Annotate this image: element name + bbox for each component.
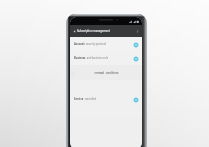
button[interactable]: renewal conditions <box>70 65 142 80</box>
button[interactable]: Account <box>70 37 142 51</box>
staticText: security protocol <box>85 42 107 46</box>
staticText: Account <box>74 42 85 46</box>
button[interactable]: Business <box>70 51 142 65</box>
staticText: Service <box>74 97 84 101</box>
button[interactable]: Back <box>71 28 78 35</box>
staticText: Business <box>74 56 86 60</box>
button[interactable]: Service <box>70 92 142 106</box>
button[interactable]: Info <box>133 56 139 62</box>
button[interactable]: Next <box>134 28 140 34</box>
staticText: renewal conditions <box>94 71 119 75</box>
button[interactable]: Info <box>133 97 139 103</box>
staticText: Subscription management <box>77 29 110 33</box>
button[interactable]: Info <box>133 42 139 48</box>
staticText: cancelled <box>84 97 97 101</box>
staticText: and business rule <box>86 56 109 60</box>
